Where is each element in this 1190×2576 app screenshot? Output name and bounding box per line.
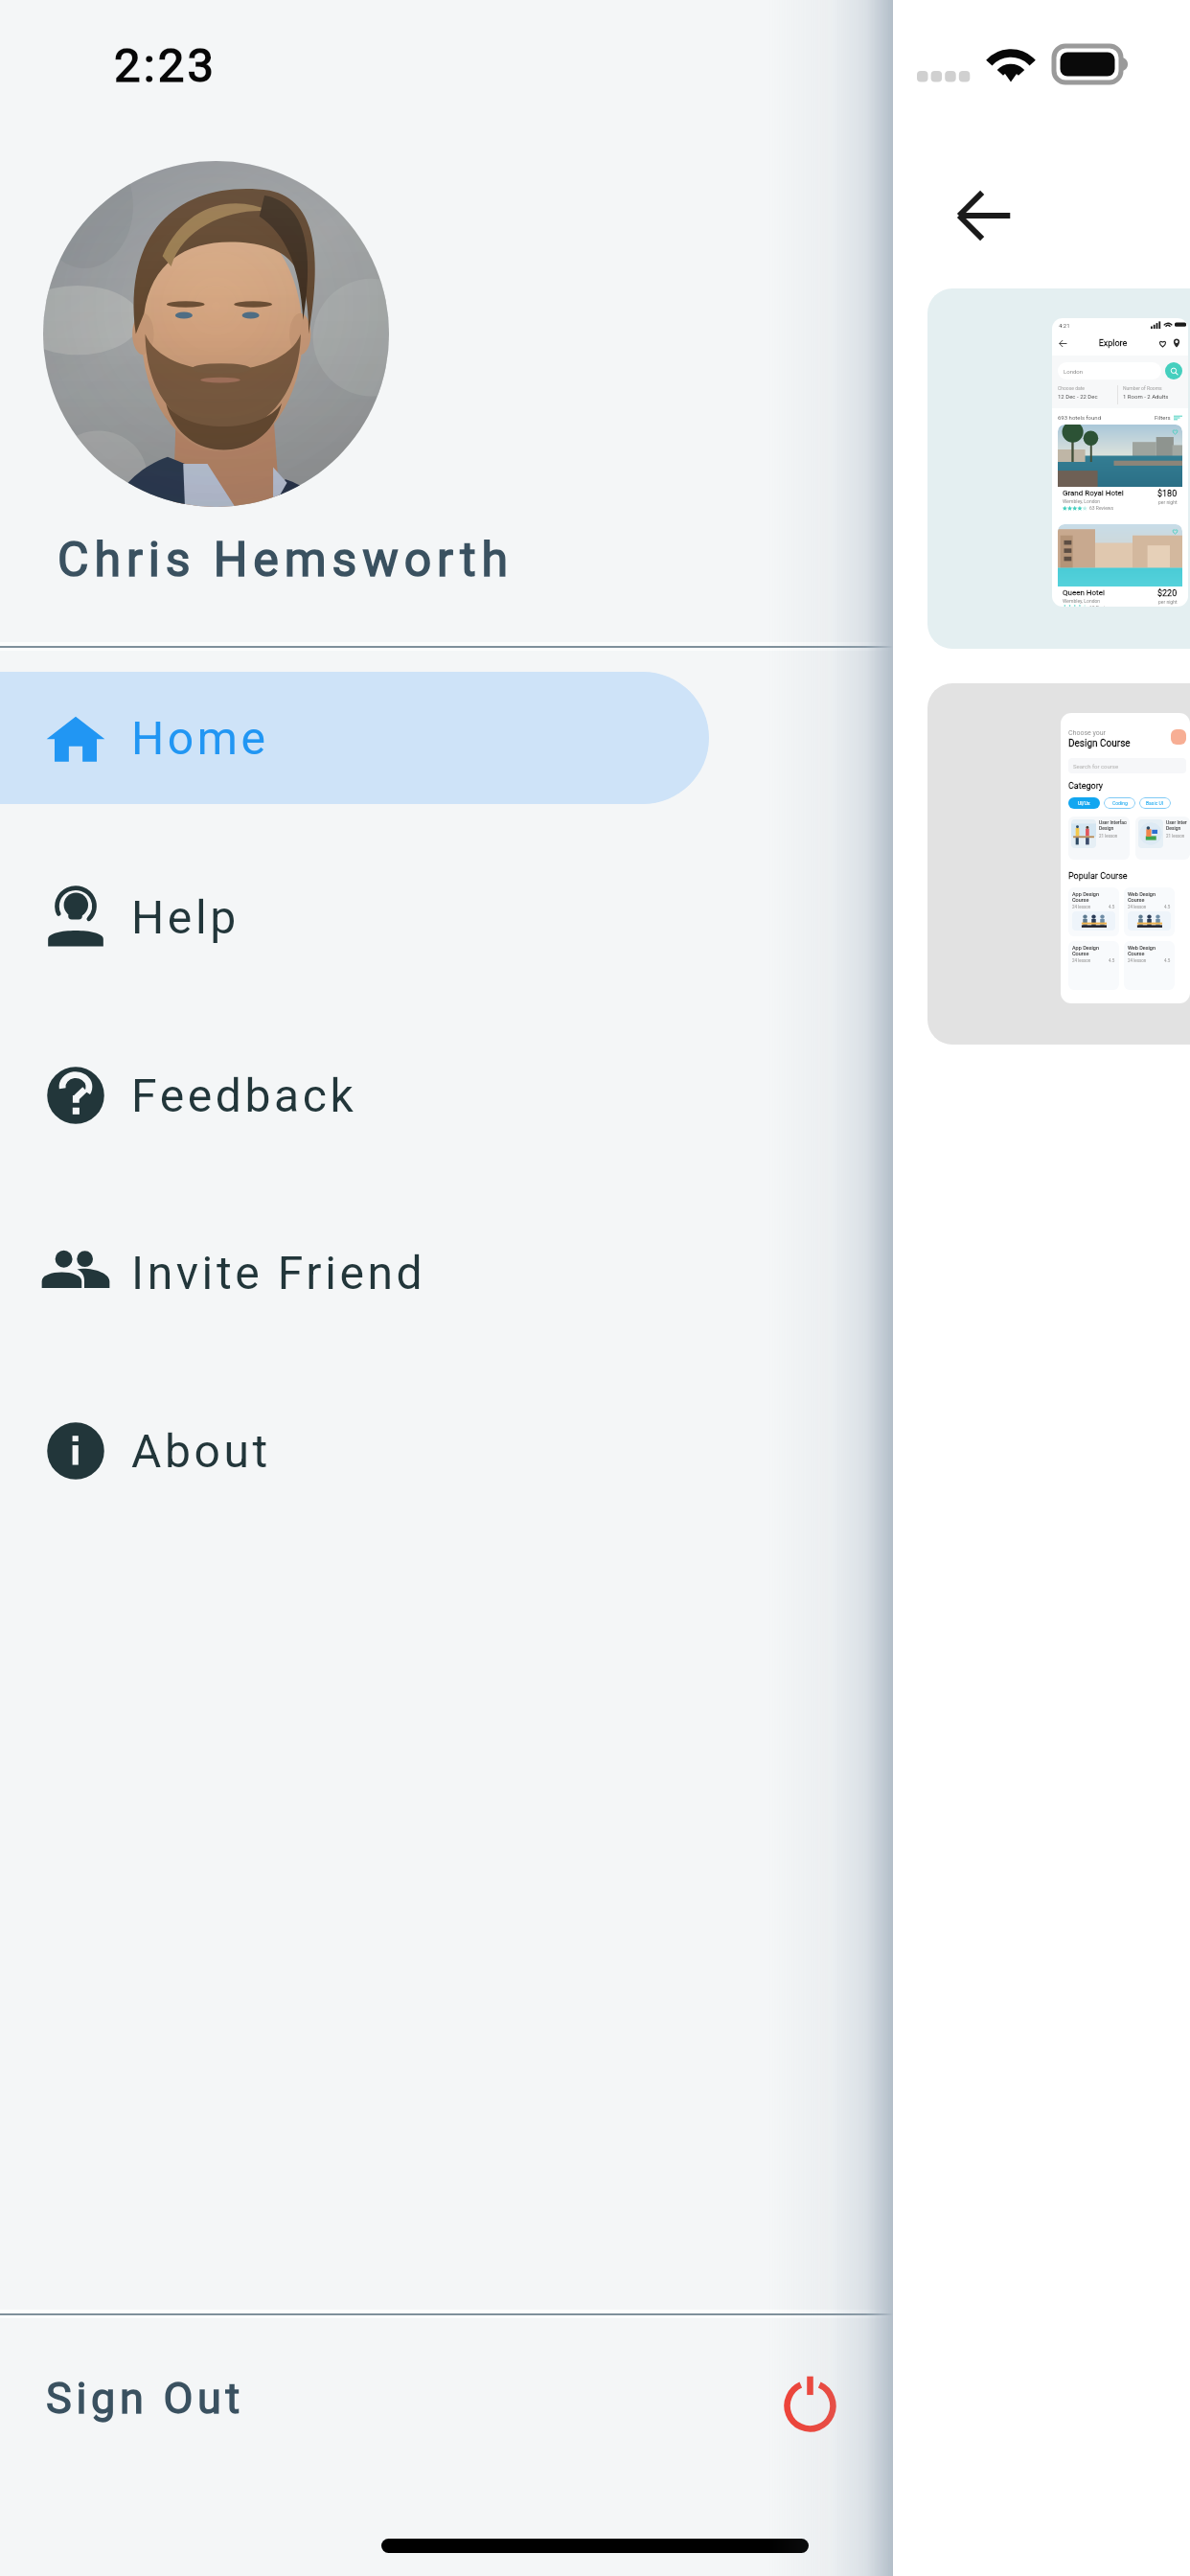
- staticText: Invite Friend: [131, 1246, 426, 1299]
- staticText: User Interface Design: [1166, 819, 1187, 831]
- staticText: $220: [1157, 588, 1178, 599]
- staticText: Choose date: [1058, 385, 1086, 391]
- button[interactable]: Coding: [1104, 797, 1135, 809]
- staticText: 4.5: [1109, 905, 1115, 909]
- staticText: Coding: [1112, 800, 1128, 806]
- staticText: Chris Hemsworth: [57, 532, 514, 588]
- button[interactable]: Back: [954, 186, 1014, 245]
- staticText: Help: [131, 890, 240, 944]
- staticText: Popular Course: [1068, 871, 1128, 882]
- staticText: 24 lesson: [1128, 905, 1147, 909]
- staticText: 63 Reviews: [1089, 605, 1114, 607]
- button[interactable]: About: [0, 1385, 893, 1517]
- staticText: Feedback: [131, 1069, 357, 1122]
- button[interactable]: Feedback: [0, 1029, 893, 1161]
- staticText: About: [131, 1424, 271, 1478]
- button[interactable]: Help: [0, 851, 893, 983]
- staticText: per night: [1158, 499, 1178, 505]
- staticText: Wembley, London: [1063, 498, 1101, 504]
- staticText: 4.5: [1164, 905, 1171, 909]
- button[interactable]: Sign Out: [0, 2315, 893, 2480]
- staticText: per night: [1158, 599, 1178, 605]
- staticText: User Interface Design: [1099, 819, 1127, 831]
- button[interactable]: Design course app preview: [927, 683, 1190, 1045]
- staticText: Sign Out: [46, 2373, 245, 2424]
- staticText: Category: [1068, 781, 1104, 792]
- button[interactable]: UI/Ux: [1068, 797, 1100, 809]
- staticText: Home: [131, 711, 269, 765]
- staticText: 4.5: [1109, 958, 1115, 963]
- staticText: 1 Room - 2 Adults: [1123, 393, 1169, 400]
- staticText: $180: [1157, 489, 1178, 499]
- staticText: 2:23: [114, 38, 217, 93]
- staticText: App Design Course: [1072, 945, 1099, 956]
- staticText: 24 lesson: [1072, 905, 1091, 909]
- staticText: Filters: [1155, 414, 1171, 421]
- staticText: 24 lesson: [1072, 958, 1091, 963]
- staticText: 24 lesson: [1128, 958, 1147, 963]
- staticText: Web Design Course: [1128, 945, 1156, 956]
- staticText: 63 Reviews: [1089, 505, 1114, 511]
- staticText: Wembley, London: [1063, 598, 1101, 604]
- staticText: 12 Dec - 22 Dec: [1058, 393, 1098, 400]
- staticText: Design Course: [1068, 738, 1131, 749]
- staticText: Search for course: [1073, 763, 1119, 770]
- button[interactable]: Hotel booking app preview: [927, 288, 1190, 649]
- staticText: London: [1064, 368, 1084, 375]
- staticText: Web Design Course: [1128, 891, 1156, 903]
- staticText: 21 lesson: [1166, 834, 1185, 839]
- staticText: Choose your: [1068, 729, 1106, 737]
- staticText: 4.5: [1164, 958, 1171, 963]
- staticText: 21 lesson: [1099, 834, 1118, 839]
- staticText: Basic UI: [1146, 800, 1164, 806]
- staticText: UI/Ux: [1078, 800, 1090, 806]
- staticText: App Design Course: [1072, 891, 1099, 903]
- staticText: 4:21: [1059, 322, 1070, 329]
- staticText: Number of Rooms: [1123, 385, 1162, 391]
- staticText: Explore: [1067, 338, 1158, 349]
- button[interactable]: Home: [0, 672, 893, 804]
- staticText: Queen Hotel: [1063, 588, 1105, 597]
- button[interactable]: Invite Friend: [0, 1207, 893, 1339]
- staticText: Grand Royal Hotel: [1063, 489, 1124, 497]
- staticText: 693 hotels found: [1058, 414, 1102, 421]
- button[interactable]: Basic UI: [1139, 797, 1171, 809]
